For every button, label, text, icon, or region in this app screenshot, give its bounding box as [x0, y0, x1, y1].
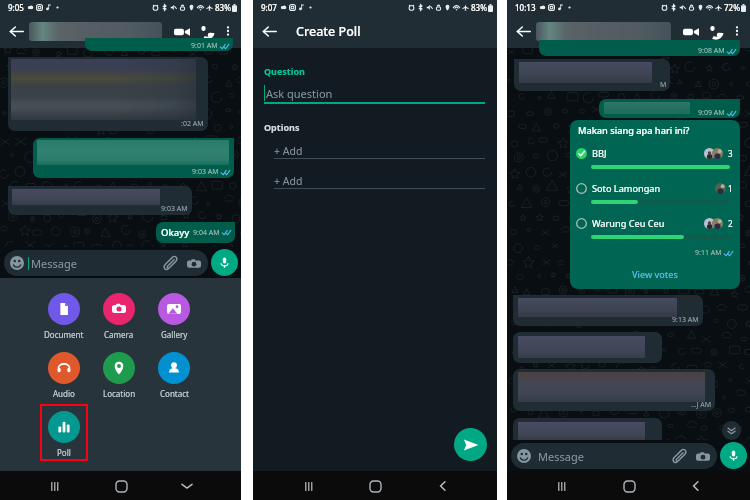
button[interactable]: Audio: [36, 352, 92, 384]
button[interactable]: Camera: [91, 293, 147, 325]
button[interactable]: Back: [5, 20, 27, 42]
button[interactable]: Location: [91, 352, 147, 384]
staticText: Soto Lamongan: [592, 182, 661, 195]
staticText: Location: [103, 388, 136, 399]
staticText: 10:13: [515, 2, 536, 13]
button[interactable]: Gallery: [146, 293, 202, 325]
button[interactable]: Recents: [295, 473, 321, 499]
staticText: View votes: [632, 268, 678, 280]
button[interactable]: Home: [362, 473, 388, 499]
button[interactable]: Back: [430, 473, 456, 499]
staticText: 9:03 AM: [192, 167, 219, 177]
button[interactable]: Camera: [186, 256, 201, 271]
button[interactable]: Soto Lamongan: [570, 182, 740, 204]
button[interactable]: Send poll: [454, 428, 487, 461]
staticText: 72%: [724, 2, 740, 13]
staticText: 9:08 AM: [698, 46, 725, 56]
button[interactable]: Voice call: [197, 22, 216, 41]
staticText: Poll: [57, 447, 71, 458]
button[interactable]: 9:03 AM: [8, 186, 192, 215]
button[interactable]: Poll: [36, 411, 92, 443]
button[interactable]: View votes: [570, 263, 740, 285]
staticText: Document: [44, 329, 84, 340]
button[interactable]: + Add: [274, 144, 303, 158]
staticText: 9:04 AM: [193, 228, 220, 238]
button[interactable]: Attach: [163, 256, 178, 271]
staticText: 83%: [471, 2, 487, 13]
button[interactable]: Recents: [41, 473, 67, 499]
button[interactable]: Video call: [172, 22, 191, 41]
button[interactable]: [536, 22, 671, 41]
staticText: + Add: [274, 144, 303, 158]
button[interactable]: 9:09 AM: [599, 99, 740, 118]
button[interactable]: Voice message: [720, 442, 747, 469]
staticText: Audio: [53, 388, 75, 399]
staticText: Ask question: [266, 86, 333, 101]
button[interactable]: :02 AM: [8, 57, 208, 131]
staticText: 9:03 AM: [161, 204, 188, 214]
button[interactable]: More options: [729, 23, 745, 39]
staticText: 2: [728, 218, 733, 229]
staticText: Makan siang apa hari ini?: [578, 124, 690, 137]
button[interactable]: Video call: [681, 22, 700, 41]
button[interactable]: Home: [108, 473, 134, 499]
staticText: Gallery: [161, 329, 188, 340]
staticText: Create Poll: [296, 23, 361, 40]
staticText: 9:09 AM: [698, 108, 725, 118]
button[interactable]: ...J AM: [513, 369, 715, 411]
button[interactable]: Document: [36, 293, 92, 325]
button[interactable]: Voice message: [211, 249, 238, 276]
staticText: 9:05: [8, 2, 24, 13]
staticText: 83%: [215, 2, 231, 13]
staticText: :02 AM: [181, 119, 204, 129]
staticText: M: [660, 80, 667, 90]
button[interactable]: Voice call: [706, 22, 725, 41]
staticText: 9:07: [261, 2, 277, 13]
button[interactable]: Back: [174, 473, 200, 499]
staticText: Message: [538, 449, 584, 464]
button[interactable]: [29, 22, 162, 41]
staticText: 3: [728, 148, 733, 159]
staticText: Warung Ceu Ceu: [592, 217, 665, 230]
staticText: BBJ: [592, 147, 607, 160]
staticText: 9:01 AM: [191, 41, 218, 51]
button[interactable]: Camera: [695, 449, 710, 464]
staticText: + Add: [274, 174, 303, 188]
button[interactable]: Warung Ceu Ceu: [570, 217, 740, 239]
button[interactable]: 9:03 AM: [33, 138, 234, 178]
staticText: Okayy: [161, 226, 190, 239]
button[interactable]: [513, 332, 662, 363]
staticText: Options: [264, 121, 300, 133]
button[interactable]: Back: [258, 20, 280, 42]
staticText: ...J AM: [691, 400, 712, 410]
button[interactable]: More options: [220, 23, 236, 39]
button[interactable]: Message: [511, 443, 717, 469]
button[interactable]: + Add: [274, 174, 303, 188]
button[interactable]: 9:13 AM: [513, 295, 703, 326]
button[interactable]: Makan siang apa hari ini?: [570, 120, 740, 289]
staticText: Message: [31, 256, 77, 271]
button[interactable]: Okayy: [156, 222, 235, 243]
button[interactable]: M: [514, 59, 670, 91]
button[interactable]: BBJ: [570, 147, 740, 169]
staticText: 9:13 AM: [672, 315, 699, 325]
button[interactable]: Message: [4, 250, 208, 276]
staticText: Contact: [160, 388, 189, 399]
button[interactable]: Attach: [672, 449, 687, 464]
staticText: 9:11 AM: [695, 248, 722, 258]
button[interactable]: Contact: [146, 352, 202, 384]
button[interactable]: Back: [683, 473, 709, 499]
button[interactable]: [513, 418, 662, 445]
button[interactable]: Back: [512, 20, 534, 42]
button[interactable]: Home: [616, 473, 642, 499]
button[interactable]: Recents: [548, 473, 574, 499]
staticText: Question: [264, 65, 305, 77]
staticText: 1: [728, 183, 733, 194]
staticText: Camera: [104, 329, 134, 340]
button[interactable]: Scroll to bottom: [722, 421, 741, 440]
